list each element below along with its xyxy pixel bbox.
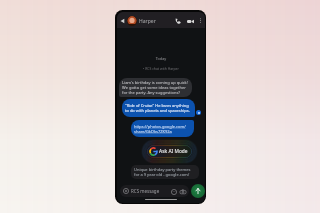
button[interactable]: More options	[196, 16, 205, 25]
button[interactable]: "Ride of Cruise" He loves anything to do…	[122, 99, 195, 117]
staticText: Unique birthday party themes for a 9 yea…	[134, 167, 196, 177]
staticText: "Ride of Cruise" He loves anything to do…	[125, 103, 192, 113]
button[interactable]: Camera	[179, 188, 186, 195]
staticText: • RCS chat with Harper	[117, 66, 205, 71]
button[interactable]: Unique birthday party themes for a 9 yea…	[131, 165, 199, 179]
staticText: RCS message	[131, 188, 160, 194]
staticText: https://photos.google.com/share/GkDks7ZK…	[134, 124, 191, 134]
button[interactable]: Back	[118, 16, 128, 26]
button[interactable]: Video call	[185, 16, 195, 26]
staticText: Harper	[139, 18, 156, 25]
button[interactable]: Send	[191, 184, 205, 198]
button[interactable]: Emoji	[170, 188, 177, 195]
button[interactable]: https://photos.google.com/share/GkDks7ZK…	[131, 120, 194, 137]
button[interactable]: Call	[173, 16, 183, 26]
staticText: Today	[117, 56, 205, 61]
staticText: Liam's birthday is coming up quick! We g…	[122, 80, 189, 95]
staticText: Ask AI Mode	[159, 148, 188, 155]
button[interactable]: Ask AI Mode	[148, 146, 191, 157]
button[interactable]: RCS message	[120, 185, 189, 197]
button[interactable]	[127, 16, 137, 26]
button[interactable]: Liam's birthday is coming up quick! We g…	[119, 78, 192, 97]
